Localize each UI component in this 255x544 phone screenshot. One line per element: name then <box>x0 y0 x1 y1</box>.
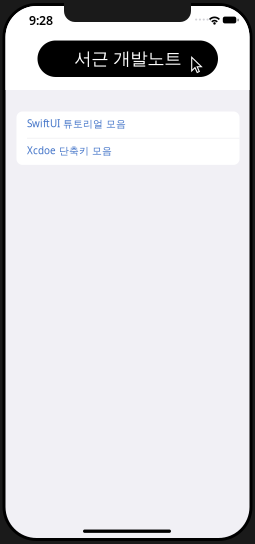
button[interactable]: SwiftUI 튜토리얼 모음 <box>16 111 239 138</box>
staticText: 서근 개발노트 <box>74 48 181 70</box>
button[interactable]: Xcdoe 단축키 모음 <box>16 139 239 165</box>
staticText: 9:28 <box>29 12 53 29</box>
staticText: Xcdoe 단축키 모음 <box>27 144 112 157</box>
staticText: SwiftUI 튜토리얼 모음 <box>27 117 126 130</box>
button[interactable]: 서근 개발노트 <box>37 40 218 77</box>
